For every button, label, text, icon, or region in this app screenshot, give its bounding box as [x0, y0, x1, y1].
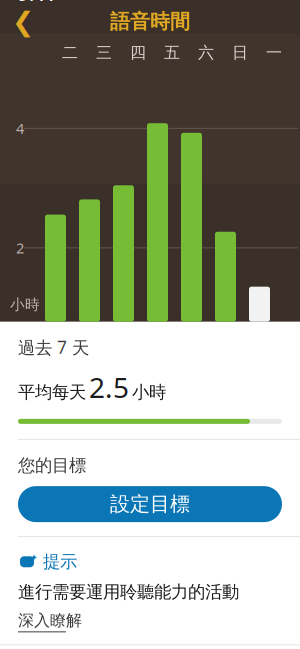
button[interactable]: 設定目標	[18, 486, 282, 522]
staticText: 日	[232, 43, 248, 62]
staticText: 語音時間	[110, 9, 190, 34]
staticText: 平均每天	[18, 382, 86, 403]
staticText: 四	[130, 43, 146, 62]
staticText: 2.5	[89, 369, 129, 406]
staticText: 設定目標	[110, 492, 190, 516]
staticText: 深入瞭解	[18, 611, 82, 630]
button[interactable]: Back	[6, 5, 40, 39]
staticText: ❮	[12, 6, 34, 37]
staticText: 小時	[10, 296, 40, 314]
staticText: 過去 7 天	[18, 336, 89, 359]
staticText: 4	[16, 119, 24, 138]
staticText: ✦	[30, 552, 38, 563]
staticText: 9:41	[18, 0, 56, 6]
staticText: 進行需要運用聆聽能力的活動	[18, 581, 239, 603]
button[interactable]: 深入瞭解	[18, 611, 82, 632]
staticText: 您的目標	[18, 455, 86, 476]
staticText: 五	[164, 43, 180, 62]
staticText: 六	[198, 43, 214, 62]
staticText: 一	[266, 43, 282, 62]
staticText: 2	[16, 238, 24, 258]
staticText: 二	[62, 43, 78, 62]
staticText: 小時	[132, 382, 166, 403]
staticText: 三	[96, 43, 112, 62]
staticText: 提示	[43, 551, 77, 572]
